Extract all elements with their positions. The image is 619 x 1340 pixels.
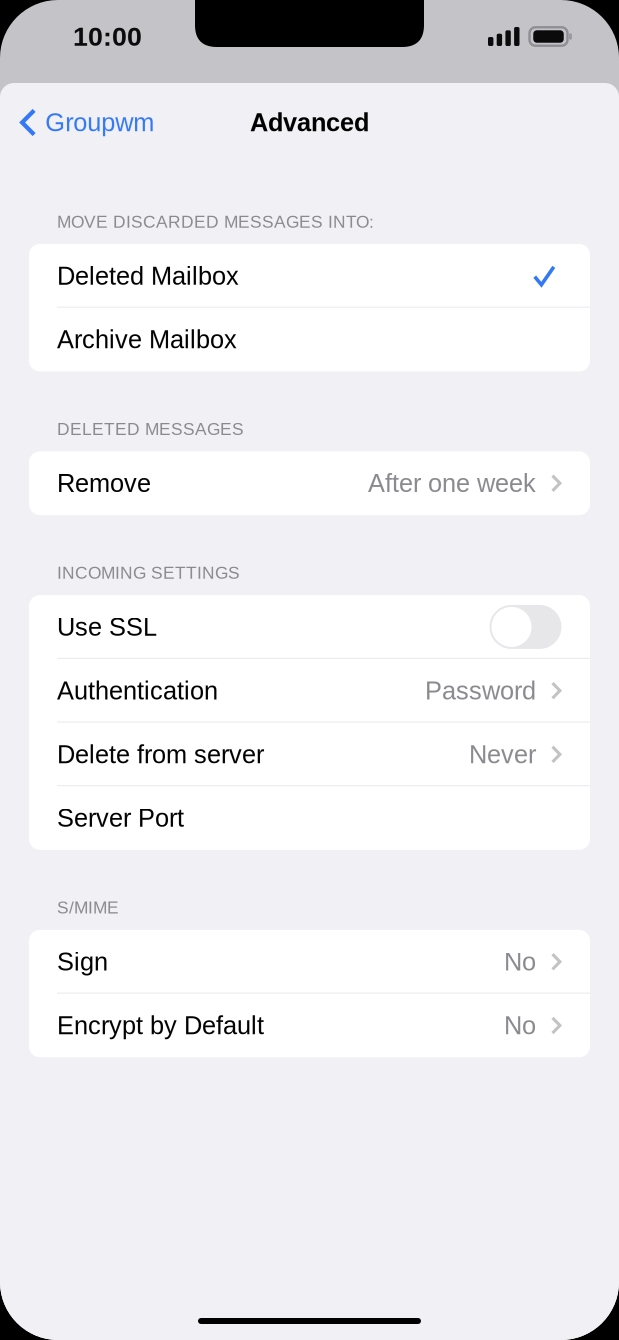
button[interactable]: Authentication	[29, 659, 590, 722]
staticText: Deleted Mailbox	[57, 262, 239, 290]
staticText: Authentication	[57, 676, 218, 705]
button[interactable]: Groupwm	[0, 93, 168, 151]
staticText: Encrypt by Default	[57, 1011, 264, 1040]
button[interactable]: Server Port	[29, 786, 590, 850]
staticText: Advanced	[250, 108, 369, 137]
staticText: After one week	[368, 469, 536, 497]
staticText: Password	[425, 676, 536, 705]
staticText: Delete from server	[57, 740, 264, 768]
button[interactable]: Archive Mailbox	[29, 308, 590, 371]
button[interactable]: Deleted Mailbox	[29, 244, 590, 308]
staticText: No	[504, 1011, 536, 1040]
staticText: Use SSL	[57, 613, 157, 641]
staticText: Archive Mailbox	[57, 325, 237, 354]
staticText: MOVE DISCARDED MESSAGES INTO:	[57, 212, 374, 231]
staticText: S/MIME	[57, 898, 119, 917]
staticText: Remove	[57, 469, 151, 497]
button[interactable]: Delete from server	[29, 722, 590, 786]
button[interactable]: Remove	[29, 451, 590, 515]
staticText: Never	[469, 740, 536, 768]
button[interactable]: Sign	[29, 930, 590, 994]
button[interactable]: Use SSL	[29, 595, 590, 659]
button[interactable]: Encrypt by Default	[29, 994, 590, 1057]
staticText: Server Port	[57, 804, 184, 832]
staticText: 10:00	[73, 22, 142, 51]
staticText: Groupwm	[45, 108, 154, 137]
staticText: Sign	[57, 948, 108, 976]
staticText: DELETED MESSAGES	[57, 419, 244, 439]
staticText: No	[504, 948, 536, 976]
staticText: INCOMING SETTINGS	[57, 563, 240, 582]
